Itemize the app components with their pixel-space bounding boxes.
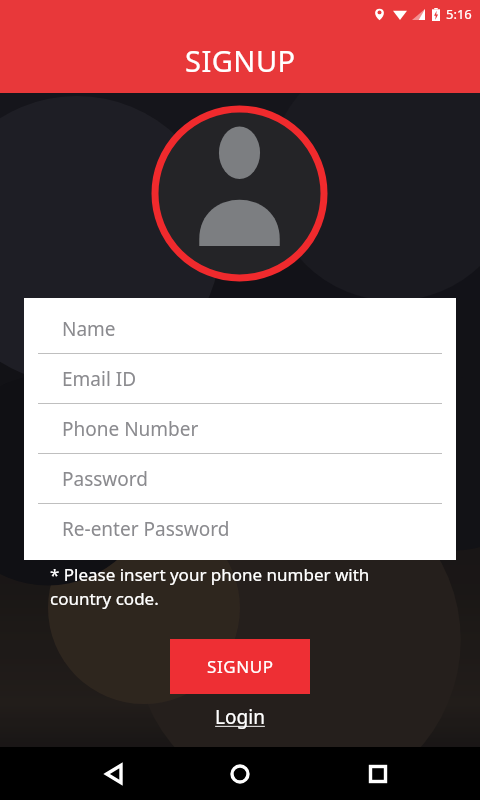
button[interactable]: Login: [195, 701, 285, 733]
button[interactable]: Home: [211, 747, 269, 800]
staticText: 5:16: [446, 5, 472, 23]
button[interactable]: Password: [24, 454, 456, 504]
staticText: Phone Number: [62, 416, 199, 442]
staticText: SIGNUP: [185, 41, 296, 80]
staticText: Re-enter Password: [62, 516, 230, 542]
button[interactable]: Email ID: [24, 354, 456, 404]
staticText: Login: [215, 704, 265, 730]
button[interactable]: Name: [24, 304, 456, 354]
staticText: SIGNUP: [207, 655, 274, 678]
button[interactable]: Back: [86, 747, 144, 800]
staticText: * Please insert your phone number with c…: [50, 563, 435, 610]
staticText: Password: [62, 466, 148, 492]
button[interactable]: Phone Number: [24, 404, 456, 454]
staticText: Email ID: [62, 366, 137, 392]
button[interactable]: Recent apps: [349, 747, 407, 800]
staticText: Name: [62, 316, 116, 342]
button[interactable]: SIGNUP: [170, 639, 310, 694]
button[interactable]: Profile photo: [152, 106, 327, 281]
button[interactable]: Re-enter Password: [24, 504, 456, 554]
